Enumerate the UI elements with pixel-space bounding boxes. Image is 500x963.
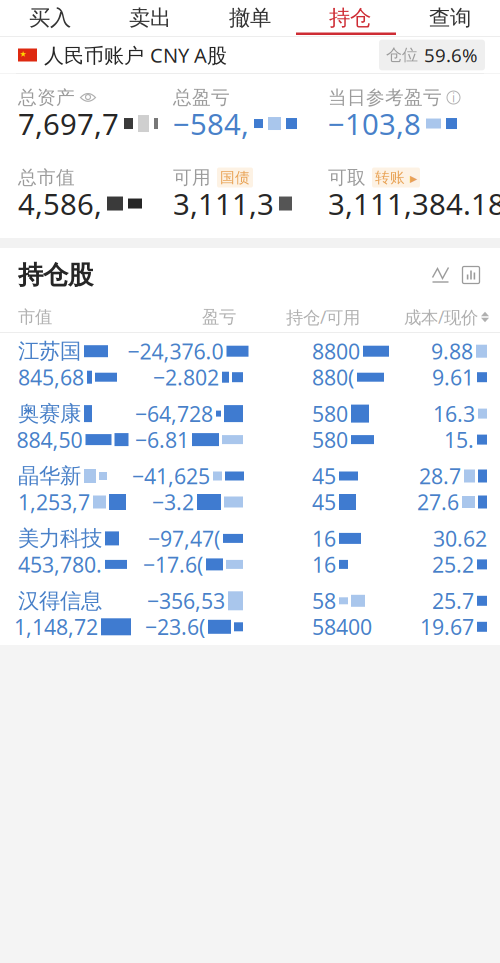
staticText: 845,68 [18,363,84,391]
staticText: 可用 [173,166,211,189]
staticText: 9.88 [431,337,473,365]
button[interactable]: 买入 [0,1,100,35]
staticText: 总资产 [18,86,75,109]
staticText: −23.6( [145,613,205,641]
staticText: 8800 [312,337,360,365]
staticText: i [452,90,455,105]
staticText: 880( [312,363,354,391]
staticText: 持仓/可用 [286,305,360,328]
staticText: 美力科技 [18,525,102,551]
staticText: 晶华新 [18,463,81,489]
staticText: 仓位 [386,45,418,65]
staticText: 7,697,7 [18,104,119,143]
staticText: −3.2 [152,488,194,516]
button[interactable]: 汉得信息 [0,583,500,645]
staticText: 27.6 [417,488,459,516]
staticText: 580 [312,425,348,454]
staticText: 1,253,7 [18,488,90,516]
button[interactable]: 江苏国 [0,333,500,395]
button[interactable]: 仓位 [379,40,485,70]
button[interactable]: Trend chart [426,260,456,290]
staticText: 可取 [328,166,366,189]
staticText: −584, [173,104,249,143]
button[interactable]: 卖出 [100,1,200,35]
staticText: ★ [19,49,26,59]
staticText: 45 [312,488,336,516]
staticText: −64,728 [135,399,213,428]
button[interactable]: 奥赛康 [0,395,500,458]
staticText: 持仓 [329,5,371,31]
button[interactable]: 持仓 [300,1,400,35]
staticText: 转账 ▸ [375,168,417,186]
staticText: 45 [312,462,336,490]
button[interactable]: Bar chart [456,260,486,290]
staticText: 19.67 [420,613,474,641]
staticText: 撤单 [229,5,271,31]
staticText: 国债 [220,168,250,186]
button[interactable]: 晶华新 [0,458,500,520]
staticText: 9.61 [432,363,474,391]
staticText: 成本/现价 [404,305,478,328]
staticText: 16 [312,550,336,578]
staticText: 人民币账户 CNY A股 [44,42,227,68]
staticText: −356,53 [147,587,225,615]
staticText: 4,586, [18,184,102,223]
staticText: 买入 [29,5,71,31]
staticText: 3,111,384.18 [328,184,500,223]
staticText: 58400 [312,613,372,641]
staticText: 59.6% [424,43,478,67]
staticText: 16 [312,524,336,552]
staticText: 15. [444,425,474,454]
staticText: 江苏国 [18,338,81,364]
staticText: 当日参考盈亏 [328,86,442,109]
staticText: 市值 [18,306,52,328]
staticText: 30.62 [433,524,487,552]
staticText: 总市值 [18,166,75,189]
staticText: −2.802 [153,363,219,391]
staticText: 453,780. [18,550,102,578]
staticText: 25.2 [432,550,474,578]
staticText: 查询 [429,5,471,31]
staticText: −6.81 [135,425,189,454]
staticText: 28.7 [419,462,461,490]
staticText: 总盈亏 [173,86,230,109]
button[interactable]: 撤单 [200,1,300,35]
staticText: −17.6( [143,550,203,578]
button[interactable]: 美力科技 [0,520,500,583]
staticText: 持仓股 [18,259,93,290]
staticText: −97,47( [148,524,220,552]
staticText: 盈亏 [202,306,236,328]
button[interactable]: 查询 [400,1,500,35]
staticText: −41,625 [132,462,210,490]
staticText: 卖出 [129,5,171,31]
staticText: 58 [312,587,336,615]
staticText: 884,50 [16,425,82,454]
staticText: 3,111,3 [173,184,274,223]
staticText: 25.7 [432,587,474,615]
staticText: 16.3 [433,399,475,428]
staticText: 汉得信息 [18,588,102,614]
staticText: 580 [312,399,348,428]
staticText: 1,148,72 [14,613,98,641]
staticText: −24,376.0 [127,337,223,365]
staticText: 奥赛康 [18,400,81,427]
staticText: −103,8 [328,104,421,143]
